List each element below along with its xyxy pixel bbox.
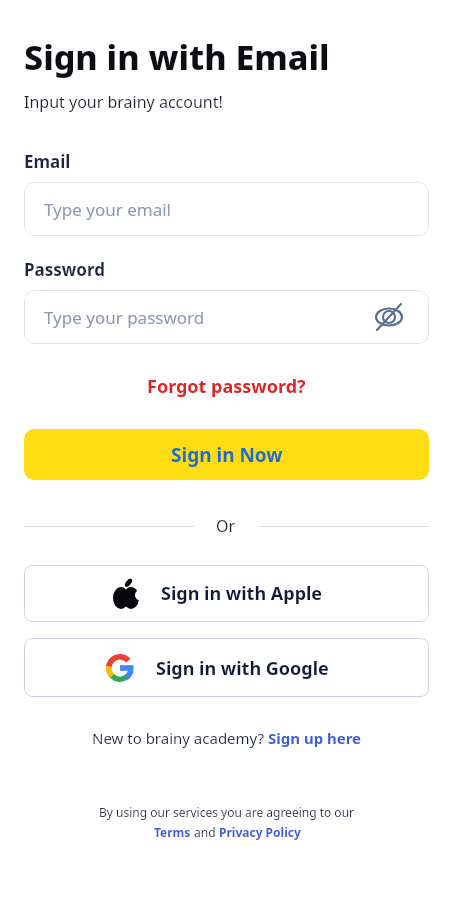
staticText: Sign up here [268, 728, 362, 748]
button[interactable]: Type your password [24, 290, 429, 344]
staticText: Sign in with Email [24, 34, 330, 80]
button[interactable]: Type your email [24, 182, 429, 236]
button[interactable]: Privacy Policy [219, 824, 301, 840]
button[interactable]: Forgot password? [24, 374, 429, 399]
button[interactable]: Terms [154, 824, 191, 840]
button[interactable]: Sign in Now [24, 429, 429, 480]
staticText: Sign in Now [171, 442, 283, 468]
staticText: Type your password [44, 306, 205, 329]
staticText: Type your email [44, 198, 171, 221]
staticText: Or [216, 515, 236, 537]
button[interactable]: New to brainy academy? [24, 728, 429, 748]
staticText: Sign in with Apple [161, 581, 323, 606]
button[interactable]: Sign in with Google [24, 638, 429, 697]
staticText: Input your brainy account! [24, 91, 223, 113]
button[interactable]: Sign in with Apple [24, 565, 429, 622]
staticText: By using our services you are agreeing t… [99, 804, 355, 820]
staticText: Email [24, 150, 71, 173]
staticText: New to brainy academy? [92, 728, 268, 748]
staticText: Password [24, 258, 105, 281]
staticText: Sign in with Google [156, 656, 329, 681]
staticText: and [191, 824, 219, 840]
staticText: Forgot password? [147, 374, 306, 399]
